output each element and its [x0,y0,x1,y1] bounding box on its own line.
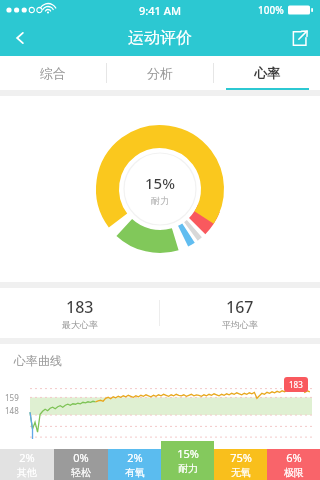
staticText: 100% [258,3,284,17]
staticText: 有氧 [125,466,145,479]
button[interactable]: 心率 [214,56,320,90]
button[interactable]: 75% [214,449,267,480]
button[interactable]: 综合 [0,56,106,90]
staticText: 9:41 AM [139,3,182,18]
staticText: 148 [5,405,19,416]
staticText: 无氧 [231,466,251,479]
button[interactable]: 183 [0,288,159,338]
staticText: 最大心率 [62,319,98,330]
button[interactable]: Share [278,20,320,56]
staticText: 0% [73,450,89,465]
staticText: 159 [5,392,19,403]
staticText: 75% [230,450,252,465]
staticText: 平均心率 [222,319,258,330]
staticText: 其他 [17,466,37,479]
button[interactable]: Back [0,20,40,56]
button[interactable]: 2% [0,449,54,480]
staticText: 15% [177,446,199,461]
button[interactable]: 分析 [107,56,213,90]
staticText: 分析 [147,65,173,81]
button[interactable]: 6% [267,449,320,480]
staticText: 15% [145,173,175,193]
staticText: 耐力 [151,195,169,206]
staticText: 6% [286,450,302,465]
staticText: 心率曲线 [14,353,62,368]
staticText: 耐力 [178,462,198,475]
button[interactable]: 2% [108,449,161,480]
staticText: 2% [19,450,35,465]
button[interactable]: 15% [161,441,214,480]
staticText: 心率 [254,65,280,81]
staticText: 183 [66,296,94,318]
staticText: 极限 [284,466,304,479]
staticText: 综合 [40,65,66,81]
button[interactable]: 0% [54,449,108,480]
staticText: 2% [127,450,143,465]
button[interactable]: 167 [160,288,320,338]
staticText: 运动评价 [128,28,192,48]
staticText: 167 [226,296,254,318]
staticText: 轻松 [71,466,91,479]
staticText: 183 [289,379,303,390]
